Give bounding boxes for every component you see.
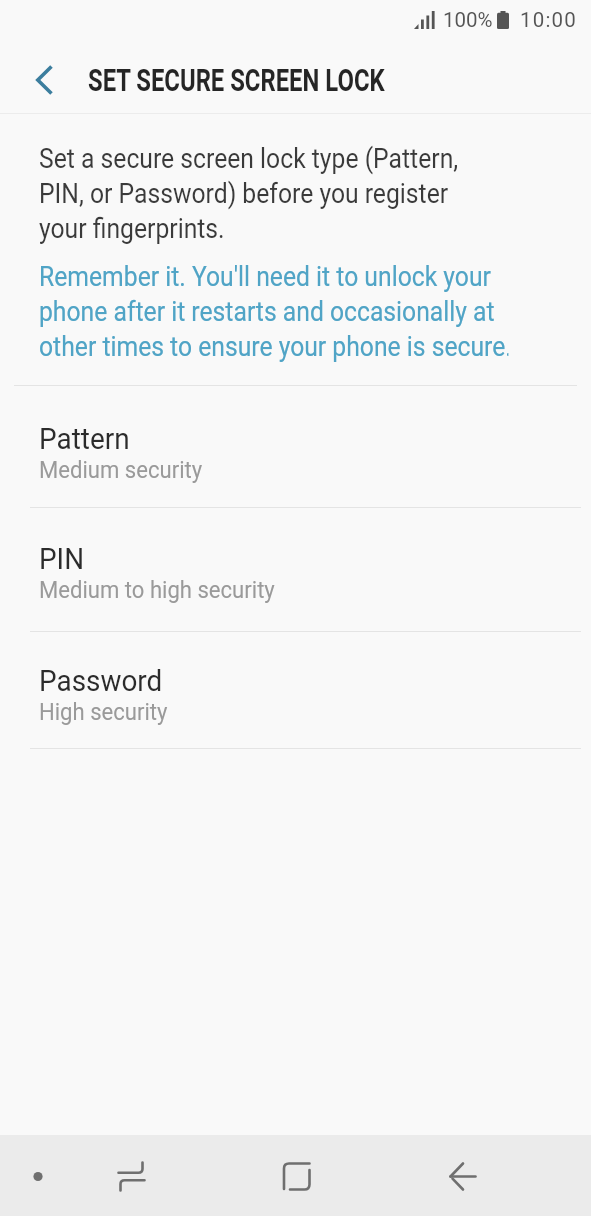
staticText: Medium security <box>39 456 203 484</box>
button[interactable] <box>394 1135 591 1216</box>
staticText: SET SECURE SCREEN LOCK <box>88 61 385 99</box>
staticText: Remember it. You'll need it to unlock yo… <box>39 261 508 363</box>
button[interactable] <box>197 1135 394 1216</box>
button[interactable]: Pattern <box>0 386 591 507</box>
button[interactable]: Password <box>0 632 591 748</box>
button[interactable]: PIN <box>0 508 591 631</box>
staticText: 10:00 <box>520 8 578 32</box>
button[interactable] <box>0 1135 197 1216</box>
staticText: Password <box>39 663 163 698</box>
staticText: High security <box>39 698 168 726</box>
button[interactable] <box>22 58 66 102</box>
staticText: 100% <box>443 8 493 32</box>
staticText: Medium to high security <box>39 576 275 604</box>
staticText: Pattern <box>39 421 130 456</box>
staticText: Set a secure screen lock type (Pattern, … <box>39 143 459 245</box>
staticText: PIN <box>39 541 85 576</box>
